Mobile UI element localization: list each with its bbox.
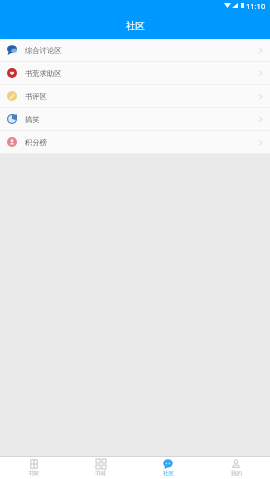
staticText: 书架: [28, 470, 39, 477]
button[interactable]: 综合讨论区: [0, 39, 270, 61]
staticText: 综合讨论区: [25, 46, 62, 55]
staticText: 书城: [95, 470, 106, 477]
staticText: 搞笑: [25, 115, 40, 124]
staticText: 社区: [126, 20, 145, 32]
button[interactable]: 搞笑: [0, 108, 270, 130]
staticText: 我的: [231, 470, 242, 477]
button[interactable]: 书荒求助区: [0, 62, 270, 84]
button[interactable]: 书架: [0, 457, 67, 479]
button[interactable]: 书城: [67, 457, 134, 479]
button[interactable]: 书评区: [0, 85, 270, 107]
staticText: 积分榜: [25, 138, 47, 147]
staticText: 11:10: [246, 1, 266, 11]
staticText: 书荒求助区: [25, 69, 62, 78]
button[interactable]: 积分榜: [0, 131, 270, 153]
staticText: 社区: [163, 470, 174, 477]
button[interactable]: 社区: [134, 457, 202, 479]
button[interactable]: 我的: [202, 457, 270, 479]
staticText: 书评区: [25, 92, 47, 101]
